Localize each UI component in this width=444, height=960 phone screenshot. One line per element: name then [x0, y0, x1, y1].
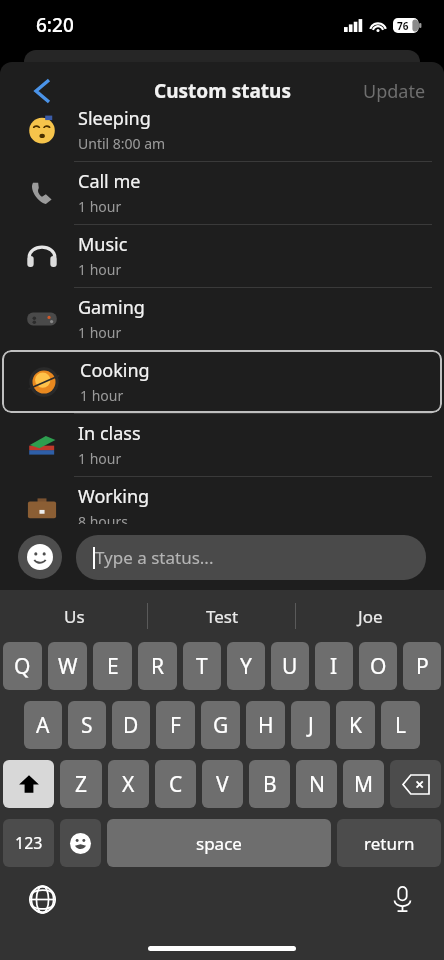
- staticText: K: [349, 711, 362, 740]
- button[interactable]: Cooking: [2, 350, 442, 413]
- button[interactable]: Z: [60, 760, 102, 808]
- staticText: space: [196, 832, 242, 855]
- button[interactable]: U: [271, 642, 309, 690]
- staticText: Sleeping: [78, 106, 151, 131]
- button[interactable]: B: [249, 760, 290, 808]
- button[interactable]: N: [296, 760, 337, 808]
- button[interactable]: Type a status...: [76, 535, 426, 580]
- staticText: Z: [75, 770, 88, 799]
- staticText: J: [308, 711, 314, 740]
- button[interactable]: Update: [345, 69, 444, 114]
- staticText: 1 hour: [78, 197, 122, 216]
- button[interactable]: E: [93, 642, 132, 690]
- staticText: U: [282, 652, 298, 681]
- staticText: E: [107, 652, 119, 681]
- staticText: G: [213, 711, 229, 740]
- button[interactable]: M: [343, 760, 384, 808]
- staticText: Gaming: [78, 295, 145, 320]
- staticText: V: [216, 770, 229, 799]
- staticText: 76: [397, 19, 409, 33]
- button[interactable]: K: [336, 701, 375, 749]
- staticText: Working: [78, 484, 150, 509]
- staticText: 1 hour: [80, 386, 124, 405]
- button[interactable]: S: [68, 701, 106, 749]
- staticText: 6:20: [36, 12, 74, 38]
- staticText: Until 8:00 am: [78, 134, 166, 153]
- button[interactable]: I: [315, 642, 353, 690]
- staticText: X: [122, 770, 135, 799]
- button[interactable]: Y: [227, 642, 265, 690]
- staticText: Call me: [78, 169, 141, 194]
- staticText: 1 hour: [78, 260, 122, 279]
- staticText: 123: [15, 832, 43, 854]
- staticText: A: [36, 711, 50, 740]
- button[interactable]: return: [337, 819, 441, 867]
- button[interactable]: X: [108, 760, 149, 808]
- staticText: 8 hours: [78, 512, 128, 531]
- staticText: F: [170, 711, 181, 740]
- staticText: Us: [64, 605, 85, 628]
- button[interactable]: Shift: [3, 760, 54, 808]
- button[interactable]: Emoji: [18, 535, 62, 579]
- button[interactable]: Back: [20, 69, 64, 113]
- button[interactable]: H: [246, 701, 285, 749]
- button[interactable]: P: [403, 642, 441, 690]
- button[interactable]: R: [138, 642, 177, 690]
- staticText: O: [370, 652, 387, 681]
- button[interactable]: Test: [148, 590, 296, 642]
- staticText: Music: [78, 232, 128, 257]
- staticText: C: [169, 770, 183, 799]
- button[interactable]: V: [202, 760, 243, 808]
- button[interactable]: W: [48, 642, 87, 690]
- button[interactable]: A: [24, 701, 62, 749]
- button[interactable]: Working: [0, 476, 444, 539]
- staticText: M: [354, 770, 374, 799]
- staticText: P: [416, 652, 429, 681]
- staticText: Cooking: [80, 358, 150, 383]
- staticText: B: [263, 770, 277, 799]
- button[interactable]: C: [155, 760, 196, 808]
- button[interactable]: Gaming: [0, 287, 444, 350]
- button[interactable]: Us: [0, 590, 148, 642]
- button[interactable]: 123: [3, 819, 54, 867]
- staticText: 1 hour: [78, 323, 122, 342]
- staticText: H: [258, 711, 274, 740]
- staticText: Custom status: [154, 78, 291, 104]
- button[interactable]: G: [201, 701, 240, 749]
- button[interactable]: space: [107, 819, 331, 867]
- staticText: L: [395, 711, 407, 740]
- button[interactable]: In class: [0, 413, 444, 476]
- button[interactable]: J: [291, 701, 330, 749]
- button[interactable]: D: [112, 701, 150, 749]
- staticText: W: [58, 652, 78, 681]
- staticText: Q: [14, 652, 31, 681]
- staticText: 1 hour: [78, 449, 122, 468]
- button[interactable]: Change keyboard language: [22, 879, 62, 919]
- button[interactable]: T: [183, 642, 221, 690]
- button[interactable]: Emoji keyboard: [60, 819, 101, 867]
- staticText: S: [81, 711, 93, 740]
- staticText: Test: [206, 605, 239, 628]
- staticText: Y: [240, 652, 252, 681]
- staticText: Joe: [358, 605, 383, 628]
- button[interactable]: L: [381, 701, 420, 749]
- button[interactable]: F: [156, 701, 195, 749]
- button[interactable]: Q: [3, 642, 42, 690]
- staticText: T: [196, 652, 208, 681]
- staticText: R: [151, 652, 165, 681]
- staticText: In class: [78, 421, 141, 446]
- button[interactable]: Joe: [296, 590, 444, 642]
- button[interactable]: Delete: [390, 760, 441, 808]
- staticText: N: [309, 770, 325, 799]
- button[interactable]: Music: [0, 224, 444, 287]
- staticText: Type a status...: [95, 546, 214, 569]
- button[interactable]: Call me: [0, 161, 444, 224]
- staticText: return: [364, 832, 415, 855]
- button[interactable]: Sleeping: [0, 98, 444, 161]
- button[interactable]: Dictate: [382, 879, 422, 919]
- staticText: I: [330, 652, 338, 681]
- staticText: Update: [363, 79, 426, 104]
- button[interactable]: O: [359, 642, 397, 690]
- staticText: D: [123, 711, 139, 740]
